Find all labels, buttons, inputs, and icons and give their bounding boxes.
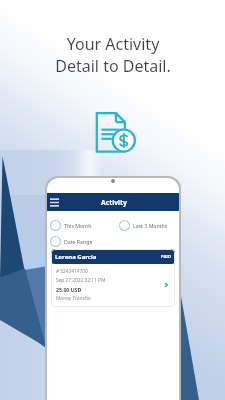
staticText: Money Transfer [56,295,92,302]
button[interactable]: Menu [48,196,60,208]
button[interactable]: Date Range [47,235,116,248]
staticText: Activity [101,198,127,207]
staticText: PAID [161,254,171,260]
staticText: Date Range [64,238,93,245]
staticText: # 5243414700 [56,268,88,275]
staticText: Last 3 Months [133,222,168,229]
staticText: Lorena Garcia [55,253,97,261]
button[interactable]: Details [161,280,171,290]
button[interactable]: This Month [47,219,116,232]
staticText: Sep 27 2022 02:11 PM [56,277,106,284]
staticText: Your Activity Detail to Detail. [55,33,171,77]
staticText: This Month [64,222,92,229]
staticText: 25.00 USD [56,286,82,293]
button[interactable]: Lorena Garcia [51,249,175,307]
button[interactable]: Last 3 Months [116,219,179,232]
